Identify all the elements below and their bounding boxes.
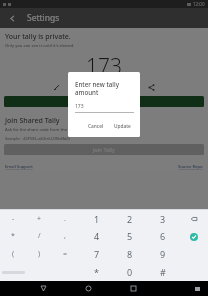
button[interactable]: Share tally [145,81,158,94]
staticText: / [38,231,41,241]
staticText: Enter new tally amount [75,80,134,96]
button[interactable]: Source Repo [178,164,203,170]
staticText: Create Shareable Counter [72,98,136,105]
staticText: Join Tally [93,146,115,153]
staticText: 3 [160,213,166,225]
staticText: - [12,214,15,224]
staticText: + [37,214,42,224]
button[interactable]: ) [26,245,52,263]
staticText: 0 [127,266,133,278]
button[interactable]: Cancel [85,121,107,132]
staticText: Settings [27,12,60,24]
staticText: 4 [94,230,100,242]
button[interactable]: ( [0,245,26,263]
staticText: = [63,249,68,259]
staticText: 5 [127,230,133,242]
staticText: 6 [160,230,166,242]
staticText: 7 [94,248,100,260]
staticText: 2 [127,213,133,225]
button[interactable]: # [146,263,179,281]
button[interactable]: 3 [146,210,179,227]
staticText: ( [12,249,15,259]
staticText: ) [38,249,41,259]
staticText: Join Shared Tally [5,116,60,126]
staticText: # [160,266,166,278]
button[interactable]: 5 [113,227,146,245]
staticText: Ask for the share code from the person w… [5,127,113,133]
staticText: Your tally is private. [5,32,71,42]
button[interactable]: Done [187,230,200,243]
button[interactable]: 4 [80,227,113,245]
button[interactable]: 2 [113,210,146,227]
button[interactable]: Backspace [187,212,200,225]
button[interactable]: = [52,245,78,263]
staticText: Sample: 43F58L-a63mU2l0bfAkG [5,136,71,142]
button[interactable]: Switch keyboard [191,282,204,295]
button[interactable]: Recents [127,282,140,295]
button[interactable]: + [26,210,52,227]
staticText: 9 [160,248,166,260]
button[interactable]: Email Support [5,164,33,170]
staticText: . [64,214,66,224]
button[interactable]: 6 [146,227,179,245]
button[interactable]: - [0,210,26,227]
button[interactable]: Create Shareable Counter [4,96,204,107]
button[interactable]: Edit tally [50,81,63,94]
button[interactable]: , [52,227,78,245]
button[interactable] [0,263,26,281]
button[interactable]: * [80,263,113,281]
button[interactable]: / [26,227,52,245]
button[interactable]: * [0,227,26,245]
staticText: 173 [75,103,84,110]
staticText: Cancel [88,123,104,130]
button[interactable]: Update [111,121,134,132]
button[interactable]: 1 [80,210,113,227]
button[interactable]: 7 [80,245,113,263]
staticText: Update [114,123,131,130]
button[interactable]: 0 [113,263,146,281]
staticText: * [94,266,99,278]
staticText: 1 [94,213,100,225]
staticText: , [64,231,66,241]
staticText: 12:00 [193,1,205,7]
staticText: Only you can see it until it's shared. [5,43,75,49]
button[interactable]: 9 [146,245,179,263]
staticText: 8 [127,248,133,260]
button[interactable]: Back [5,11,19,25]
button[interactable]: Back [37,282,50,295]
staticText: 173 [86,52,122,81]
button[interactable]: 8 [113,245,146,263]
button[interactable]: Home [82,282,95,295]
staticText: * [11,231,15,241]
